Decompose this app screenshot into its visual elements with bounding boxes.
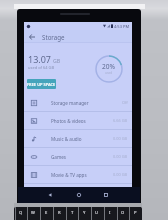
button[interactable]: R <box>53 207 65 220</box>
staticText: 20% <box>102 62 116 71</box>
staticText: P <box>134 210 137 216</box>
staticText: Off <box>122 100 128 105</box>
staticText: GB <box>53 57 61 64</box>
staticText: Games <box>51 154 67 160</box>
staticText: E <box>45 210 48 216</box>
button[interactable]: E <box>40 207 52 220</box>
staticText: I <box>109 210 111 216</box>
button[interactable]: Recent apps <box>100 189 112 201</box>
staticText: 13.07 <box>28 53 52 65</box>
staticText: R <box>58 210 61 216</box>
button[interactable]: Music & audio <box>24 130 132 147</box>
staticText: Q <box>19 210 23 216</box>
button[interactable]: Q <box>15 207 27 220</box>
staticText: W <box>31 210 35 216</box>
button[interactable]: Photos & videos <box>24 112 132 129</box>
staticText: 4:53 PM <box>114 24 130 29</box>
button[interactable]: T <box>66 207 78 220</box>
staticText: Storage <box>42 33 65 41</box>
staticText: 0.00 GB <box>113 172 128 177</box>
staticText: T <box>71 210 74 216</box>
button[interactable]: Navigate up <box>26 31 37 42</box>
staticText: FREE UP SPACE <box>27 82 56 87</box>
staticText: Photos & videos <box>51 118 86 124</box>
staticText: 0.00 GB <box>113 136 128 141</box>
button[interactable]: Home <box>73 189 85 201</box>
staticText: Y <box>83 210 86 216</box>
button[interactable]: Movie & TV apps <box>24 166 132 183</box>
staticText: 6.66 GB <box>113 118 128 123</box>
staticText: Storage manager <box>51 100 89 106</box>
staticText: O <box>121 210 125 216</box>
staticText: U <box>95 210 99 216</box>
staticText: used of 64 GB <box>28 65 55 70</box>
button[interactable]: Y <box>78 207 90 220</box>
staticText: Movie & TV apps <box>51 172 87 178</box>
staticText: Music & audio <box>51 136 82 142</box>
button[interactable]: U <box>91 207 103 220</box>
button[interactable]: I <box>104 207 116 220</box>
button[interactable]: Games <box>24 148 132 165</box>
button[interactable]: Back <box>44 189 56 201</box>
button[interactable]: O <box>117 207 129 220</box>
staticText: used <box>105 71 113 75</box>
staticText: 0.00 GB <box>113 154 128 159</box>
button[interactable]: Storage manager <box>24 94 132 111</box>
button[interactable]: P <box>129 207 141 220</box>
button[interactable]: FREE UP SPACE <box>27 79 56 89</box>
button[interactable]: W <box>27 207 39 220</box>
